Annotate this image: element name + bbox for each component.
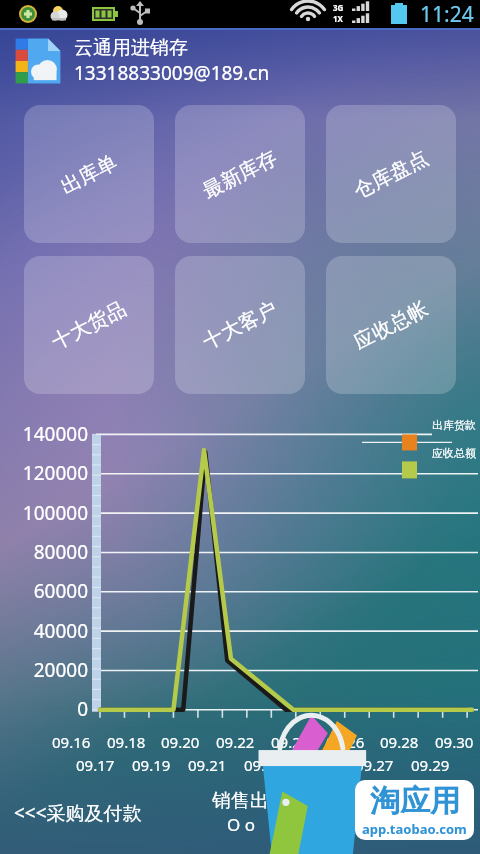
staticText: <<<采购及付款 [14,800,142,826]
staticText: 应收总额 [432,446,476,460]
button[interactable]: app.taobao.com [362,782,467,838]
button[interactable]: <<<采购及付款 [14,800,142,826]
button[interactable]: 仓库盘点 [326,105,456,243]
staticText: 40000 [33,618,88,644]
staticText: 60000 [33,578,88,604]
staticText: 100000 [22,500,88,526]
staticText: 09.18 [107,732,146,752]
button[interactable]: 十大货品 [24,256,154,394]
staticText: 淘应用 [370,782,460,820]
button[interactable]: 最新库存 [175,105,305,243]
staticText: 09.17 [76,755,115,775]
staticText: 09.22 [216,732,255,752]
staticText: 出库货款 [432,418,476,432]
staticText: 3G [333,2,344,13]
staticText: 140000 [22,421,88,447]
staticText: 最新库存 [199,145,281,204]
staticText: 云通用进销存 [74,36,188,60]
staticText: 09.25 [299,755,338,775]
button[interactable]: 十大客户 [175,256,305,394]
staticText: 09.26 [326,732,365,752]
staticText: 80000 [33,539,88,565]
staticText: 09.29 [411,755,450,775]
staticText: 09.30 [435,732,474,752]
staticText: 13318833009@189.cn [74,60,270,86]
staticText: 十大货品 [48,296,130,355]
staticText: O o [227,813,255,836]
staticText: 0 [77,696,88,722]
staticText: 120000 [22,460,88,486]
staticText: 销售出 [212,789,269,813]
staticText: 09.24 [271,732,310,752]
staticText: 11:24 [420,0,474,28]
staticText: 09.20 [161,732,200,752]
staticText: 09.21 [188,755,227,775]
staticText: 09.23 [244,755,283,775]
staticText: 09.16 [52,732,91,752]
staticText: 20000 [33,657,88,683]
staticText: 09.19 [132,755,171,775]
staticText: 09.27 [355,755,394,775]
staticText: 十大客户 [199,296,281,355]
button[interactable]: 应收总帐 [326,256,456,394]
button[interactable]: 出库单 [24,105,154,243]
staticText: 出库单 [57,150,121,199]
staticText: 应收总帐 [350,296,432,355]
staticText: 1X [333,13,343,24]
staticText: 09.28 [380,732,419,752]
staticText: app.taobao.com [362,820,467,838]
staticText: 仓库盘点 [350,145,432,204]
